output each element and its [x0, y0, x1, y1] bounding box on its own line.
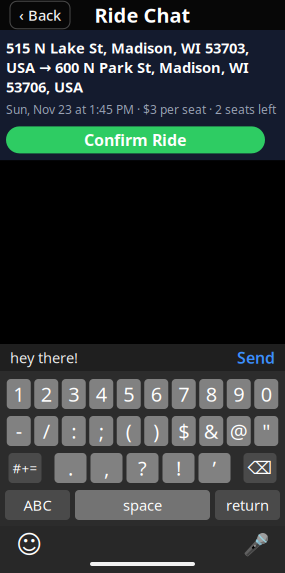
button[interactable]: Confirm Ride [6, 126, 265, 153]
button[interactable]: . [54, 453, 86, 483]
button[interactable]: ? [126, 453, 158, 483]
button[interactable]: space [75, 490, 210, 520]
staticText: 0 [261, 381, 272, 407]
button[interactable]: 7 [172, 379, 196, 409]
button[interactable]: ! [162, 453, 194, 483]
staticText: : [71, 418, 76, 444]
button[interactable]: & [199, 416, 223, 446]
staticText: 5 [123, 381, 134, 407]
button[interactable]: ) [144, 416, 168, 446]
button[interactable]: 6 [144, 379, 168, 409]
staticText: 8 [206, 381, 217, 407]
staticText: ABC [23, 495, 51, 515]
button[interactable]: Delete [243, 453, 276, 483]
button[interactable]: - [7, 416, 31, 446]
staticText: . [68, 455, 73, 481]
staticText: @ [230, 418, 248, 444]
staticText: return [226, 495, 269, 515]
button[interactable]: Emoji [16, 531, 42, 557]
button[interactable]: ‹ Back [10, 1, 70, 29]
button[interactable]: 9 [227, 379, 251, 409]
button[interactable]: 3 [62, 379, 86, 409]
button[interactable]: 5 [117, 379, 141, 409]
staticText: $ [178, 418, 189, 444]
staticText: ( [126, 418, 132, 444]
button[interactable]: 0 [254, 379, 278, 409]
staticText: #+= [12, 459, 37, 477]
staticText: ? [138, 455, 147, 481]
staticText: Sun, Nov 23 at 1:45 PM · $3 per seat · 2… [6, 101, 276, 117]
button[interactable]: : [62, 416, 86, 446]
button[interactable]: / [34, 416, 58, 446]
button[interactable]: ABC [5, 490, 70, 520]
button[interactable]: @ [227, 416, 251, 446]
staticText: ☺ [16, 530, 42, 559]
staticText: 9 [233, 381, 244, 407]
staticText: Ride Chat [94, 2, 190, 28]
staticText: / [43, 418, 50, 444]
staticText: 🎤 [242, 532, 269, 557]
staticText: Send [237, 347, 275, 368]
staticText: hey there! [10, 348, 78, 367]
button[interactable]: 2 [34, 379, 58, 409]
button[interactable]: ; [89, 416, 113, 446]
staticText: 1 [13, 381, 24, 407]
staticText: " [262, 418, 270, 444]
staticText: - [16, 418, 22, 444]
staticText: 6 [151, 381, 162, 407]
button[interactable]: ’ [198, 453, 230, 483]
staticText: space [123, 495, 162, 515]
button[interactable]: 4 [89, 379, 113, 409]
staticText: ; [99, 418, 104, 444]
staticText: , [104, 455, 109, 481]
staticText: ⌫ [247, 458, 272, 478]
button[interactable]: return [215, 490, 280, 520]
staticText: ! [176, 455, 181, 481]
staticText: & [204, 418, 219, 444]
button[interactable]: " [254, 416, 278, 446]
staticText: Confirm Ride [84, 129, 187, 150]
staticText: ‹ Back [19, 5, 61, 25]
staticText: ’ [212, 455, 216, 481]
button[interactable]: Send [237, 347, 275, 368]
button[interactable]: , [90, 453, 122, 483]
staticText: 515 N Lake St, Madison, WI 53703, USA → … [6, 38, 249, 96]
button[interactable]: 1 [7, 379, 31, 409]
staticText: 4 [96, 381, 107, 407]
staticText: 3 [68, 381, 79, 407]
staticText: ) [153, 418, 159, 444]
staticText: 2 [41, 381, 52, 407]
button[interactable]: #+= [8, 453, 41, 483]
staticText: 7 [178, 381, 189, 407]
button[interactable]: Dictation [243, 531, 269, 557]
button[interactable]: 8 [199, 379, 223, 409]
button[interactable]: $ [172, 416, 196, 446]
button[interactable]: ( [117, 416, 141, 446]
